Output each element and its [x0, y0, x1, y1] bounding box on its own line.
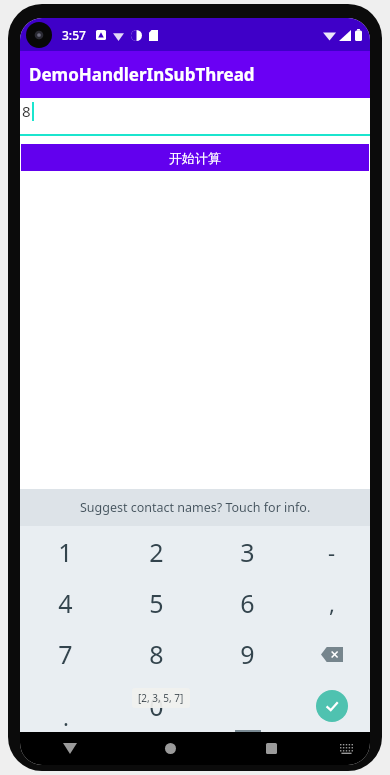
button[interactable]: Done — [293, 680, 370, 732]
staticText: [2, 3, 5, 7] — [138, 691, 184, 705]
staticText: 9 — [240, 637, 255, 671]
button[interactable]: 6 — [202, 577, 293, 628]
button[interactable]: Recents — [221, 732, 322, 765]
button[interactable]: Suggest contact names? Touch for info. — [20, 489, 370, 526]
button[interactable]: DemoHandlerInSubThread — [20, 51, 370, 98]
button[interactable]: . — [20, 680, 111, 732]
staticText: DemoHandlerInSubThread — [29, 63, 255, 86]
staticText: . — [63, 702, 69, 732]
button[interactable]: 4 — [20, 577, 111, 628]
button[interactable]: 5 — [111, 577, 202, 628]
button[interactable]: Backspace — [293, 628, 370, 680]
staticText: 1 — [58, 535, 73, 569]
button[interactable]: 9 — [202, 628, 293, 680]
staticText: 6 — [240, 586, 255, 620]
staticText: 3 — [240, 535, 255, 569]
staticText: 0 — [149, 689, 164, 723]
button[interactable]: 3 — [202, 526, 293, 577]
button[interactable] — [202, 680, 293, 732]
button[interactable]: 开始计算 — [21, 144, 369, 171]
staticText: 8 — [149, 637, 164, 671]
button[interactable]: 8 — [111, 628, 202, 680]
staticText: , — [329, 588, 335, 618]
button[interactable]: 7 — [20, 628, 111, 680]
button[interactable]: 1 — [20, 526, 111, 577]
button[interactable]: Home — [120, 732, 221, 765]
button[interactable]: Dash — [293, 526, 370, 577]
staticText: 5 — [149, 586, 164, 620]
staticText: 开始计算 — [169, 150, 221, 166]
button[interactable]: Switch keyboard — [322, 732, 370, 765]
button[interactable]: Back — [20, 732, 120, 765]
button[interactable]: 2 — [111, 526, 202, 577]
button[interactable]: 8 — [20, 98, 370, 144]
staticText: 2 — [149, 535, 164, 569]
staticText: 4 — [58, 586, 73, 620]
staticText: 7 — [58, 637, 73, 671]
staticText: - — [328, 537, 336, 567]
button[interactable]: 0 — [111, 680, 202, 732]
staticText: 8 — [22, 101, 31, 121]
button[interactable]: Comma — [293, 577, 370, 628]
staticText: 3:57 — [62, 27, 86, 43]
staticText: Suggest contact names? Touch for info. — [80, 499, 311, 516]
